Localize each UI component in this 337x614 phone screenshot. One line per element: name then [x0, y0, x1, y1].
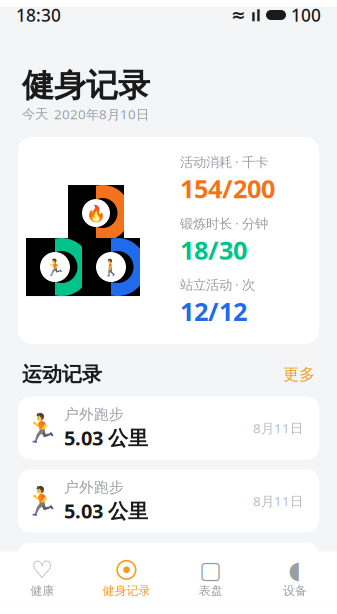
button[interactable]: ◖: [253, 552, 337, 606]
staticText: 站立活动 · 次: [180, 276, 255, 293]
staticText: 健身记录: [102, 583, 150, 598]
staticText: 5.03 公里: [64, 497, 148, 524]
staticText: 🚶: [101, 258, 121, 276]
staticText: 户外跑步: [64, 478, 124, 496]
staticText: ◖: [288, 556, 301, 583]
staticText: 🏃: [23, 412, 58, 444]
staticText: 户外跑步: [64, 405, 124, 423]
staticText: ıl: [251, 4, 261, 26]
staticText: 健康: [30, 583, 54, 598]
staticText: 2020年8月10日: [54, 105, 149, 123]
staticText: 🏃: [23, 485, 58, 517]
staticText: ⦿: [114, 558, 138, 582]
staticText: 户外跑步: [64, 551, 124, 569]
staticText: 锻炼时长 · 分钟: [180, 214, 268, 232]
staticText: ♡: [31, 556, 53, 583]
staticText: 154/200: [180, 172, 275, 205]
staticText: 🏃: [23, 558, 58, 590]
staticText: 表盘: [199, 583, 223, 598]
button[interactable]: 🏃: [18, 470, 319, 533]
staticText: 100: [291, 3, 321, 26]
staticText: 12/12: [180, 294, 247, 328]
staticText: 5.03 公里: [64, 424, 148, 451]
staticText: 运动记录: [22, 362, 102, 387]
button[interactable]: ▢: [168, 552, 253, 606]
staticText: 🔥: [86, 204, 106, 222]
staticText: 健身记录: [22, 66, 150, 105]
staticText: 8月11日: [253, 419, 303, 437]
staticText: 活动消耗 · 千卡: [180, 153, 268, 171]
staticText: 🏃: [45, 258, 65, 276]
staticText: 更多: [283, 364, 315, 384]
staticText: 18/30: [180, 233, 247, 267]
button[interactable]: 🏃: [18, 543, 319, 606]
button[interactable]: ♡: [0, 552, 84, 606]
staticText: ≈: [231, 5, 246, 25]
button[interactable]: ⦿: [84, 552, 168, 606]
button[interactable]: 更多: [283, 364, 315, 384]
staticText: 今天: [22, 106, 48, 122]
staticText: 5.03 公里: [64, 570, 148, 597]
staticText: 8月11日: [253, 492, 303, 510]
staticText: 设备: [283, 583, 307, 598]
staticText: 18:30: [16, 3, 61, 26]
staticText: ▢: [199, 556, 222, 583]
staticText: 8月11日: [253, 565, 303, 583]
button[interactable]: 🏃: [18, 397, 319, 460]
